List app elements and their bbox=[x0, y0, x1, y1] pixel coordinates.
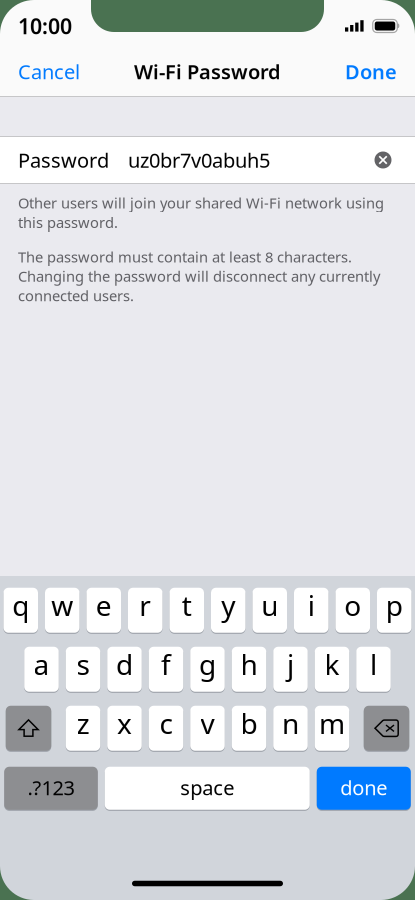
button[interactable]: d bbox=[107, 646, 142, 692]
staticText: k bbox=[324, 646, 339, 683]
staticText: e bbox=[96, 587, 112, 624]
button[interactable]: Done bbox=[327, 46, 415, 97]
staticText: x bbox=[117, 705, 132, 742]
staticText: uz0br7v0abuh5 bbox=[128, 147, 270, 173]
staticText: d bbox=[116, 646, 133, 683]
staticText: n bbox=[282, 705, 299, 742]
button[interactable]: Clear text bbox=[368, 142, 398, 178]
button[interactable]: c bbox=[149, 705, 183, 751]
staticText: Password bbox=[18, 147, 109, 173]
button[interactable]: q bbox=[3, 587, 38, 633]
button[interactable]: a bbox=[24, 646, 59, 692]
staticText: v bbox=[200, 705, 214, 742]
staticText: g bbox=[199, 646, 216, 683]
staticText: a bbox=[33, 646, 49, 683]
staticText: c bbox=[159, 705, 172, 742]
button[interactable]: done bbox=[317, 766, 411, 810]
button[interactable]: Shift bbox=[6, 705, 51, 751]
staticText: o bbox=[344, 587, 361, 624]
staticText: u bbox=[261, 587, 278, 624]
button[interactable]: m bbox=[315, 705, 349, 751]
staticText: h bbox=[240, 646, 257, 683]
button[interactable]: o bbox=[335, 587, 370, 633]
button[interactable]: s bbox=[66, 646, 100, 692]
button[interactable]: w bbox=[45, 587, 79, 633]
button[interactable]: l bbox=[356, 646, 391, 692]
button[interactable]: Password bbox=[0, 137, 415, 183]
button[interactable]: p bbox=[377, 587, 411, 633]
staticText: Wi-Fi Password bbox=[134, 58, 281, 85]
button[interactable]: z bbox=[66, 705, 100, 751]
button[interactable]: k bbox=[315, 646, 349, 692]
staticText: Other users will join your shared Wi-Fi … bbox=[18, 193, 384, 232]
staticText: done bbox=[340, 774, 387, 801]
staticText: t bbox=[182, 587, 192, 624]
staticText: The password must contain at least 8 cha… bbox=[18, 247, 380, 305]
button[interactable]: i bbox=[294, 587, 328, 633]
staticText: 10:00 bbox=[18, 12, 72, 40]
button[interactable]: f bbox=[149, 646, 183, 692]
staticText: Done bbox=[345, 58, 397, 85]
button[interactable]: .?123 bbox=[4, 766, 98, 810]
button[interactable]: n bbox=[273, 705, 308, 751]
button[interactable]: h bbox=[232, 646, 266, 692]
button[interactable]: g bbox=[190, 646, 225, 692]
staticText: l bbox=[370, 646, 377, 683]
staticText: m bbox=[319, 705, 345, 742]
staticText: p bbox=[386, 587, 403, 624]
staticText: w bbox=[51, 587, 73, 624]
button[interactable]: r bbox=[128, 587, 162, 633]
button[interactable]: t bbox=[169, 587, 204, 633]
button[interactable]: x bbox=[107, 705, 142, 751]
button[interactable]: space bbox=[105, 766, 310, 810]
staticText: space bbox=[180, 774, 234, 801]
button[interactable]: e bbox=[86, 587, 121, 633]
button[interactable]: Cancel bbox=[0, 46, 98, 97]
staticText: s bbox=[76, 646, 89, 683]
staticText: .?123 bbox=[27, 774, 74, 801]
button[interactable]: y bbox=[211, 587, 245, 633]
staticText: f bbox=[161, 646, 171, 683]
staticText: z bbox=[76, 705, 89, 742]
staticText: b bbox=[240, 705, 257, 742]
button[interactable]: Delete bbox=[364, 705, 409, 751]
button[interactable]: j bbox=[273, 646, 308, 692]
staticText: i bbox=[308, 587, 315, 624]
staticText: Cancel bbox=[18, 58, 80, 85]
staticText: q bbox=[12, 587, 29, 624]
button[interactable]: u bbox=[252, 587, 287, 633]
button[interactable]: v bbox=[190, 705, 225, 751]
button[interactable]: b bbox=[232, 705, 266, 751]
staticText: r bbox=[139, 587, 151, 624]
staticText: y bbox=[221, 587, 235, 624]
staticText: j bbox=[287, 646, 294, 683]
